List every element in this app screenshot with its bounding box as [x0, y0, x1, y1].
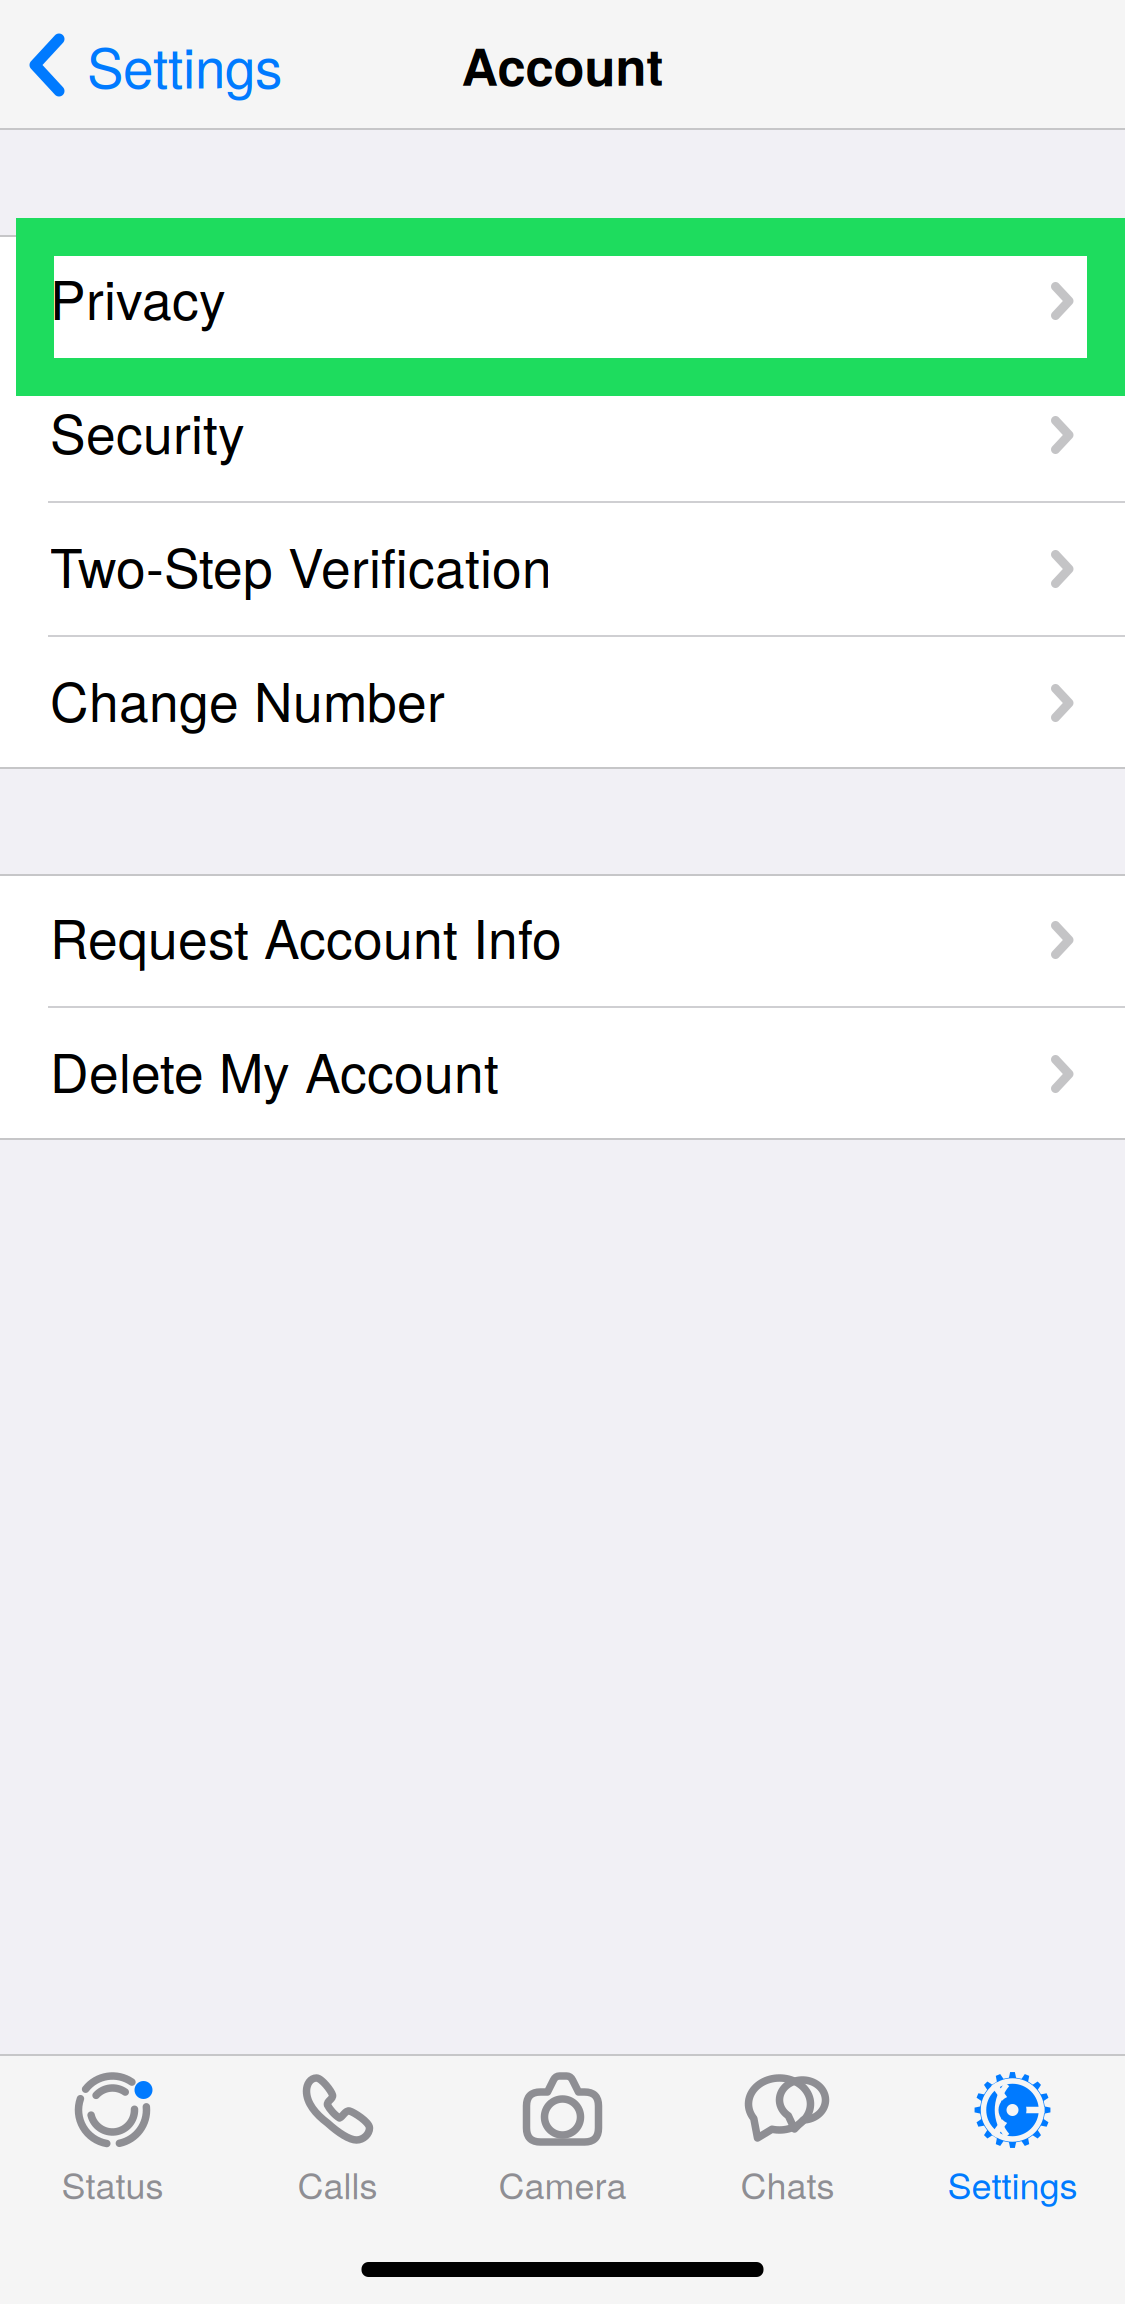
button[interactable]: Camera [450, 2070, 675, 2210]
button[interactable]: Status [0, 2070, 225, 2210]
button[interactable]: Request Account Info [0, 874, 1125, 1006]
staticText: Privacy [50, 259, 226, 335]
button[interactable]: Settings [0, 0, 302, 130]
button[interactable]: Privacy [0, 235, 1125, 367]
button[interactable]: Settings [900, 2070, 1125, 2210]
staticText: Camera [498, 2158, 626, 2210]
staticText: Request Account Info [50, 898, 562, 974]
button[interactable]: Delete My Account [0, 1008, 1125, 1140]
staticText: Settings [947, 2158, 1077, 2210]
staticText: Two-Step Verification [50, 527, 552, 603]
staticText: Account [461, 29, 663, 101]
button[interactable]: Two-Step Verification [0, 503, 1125, 635]
button[interactable]: Calls [225, 2070, 450, 2210]
staticText: Settings [87, 26, 282, 104]
button[interactable]: Chats [675, 2070, 900, 2210]
staticText: Delete My Account [50, 1032, 499, 1108]
staticText: Security [50, 393, 245, 469]
staticText: Chats [740, 2158, 834, 2210]
staticText: Change Number [50, 661, 445, 737]
button[interactable]: Change Number [0, 637, 1125, 769]
button[interactable]: Security [0, 369, 1125, 501]
staticText: Status [61, 2158, 163, 2210]
staticText: Calls [297, 2158, 377, 2210]
